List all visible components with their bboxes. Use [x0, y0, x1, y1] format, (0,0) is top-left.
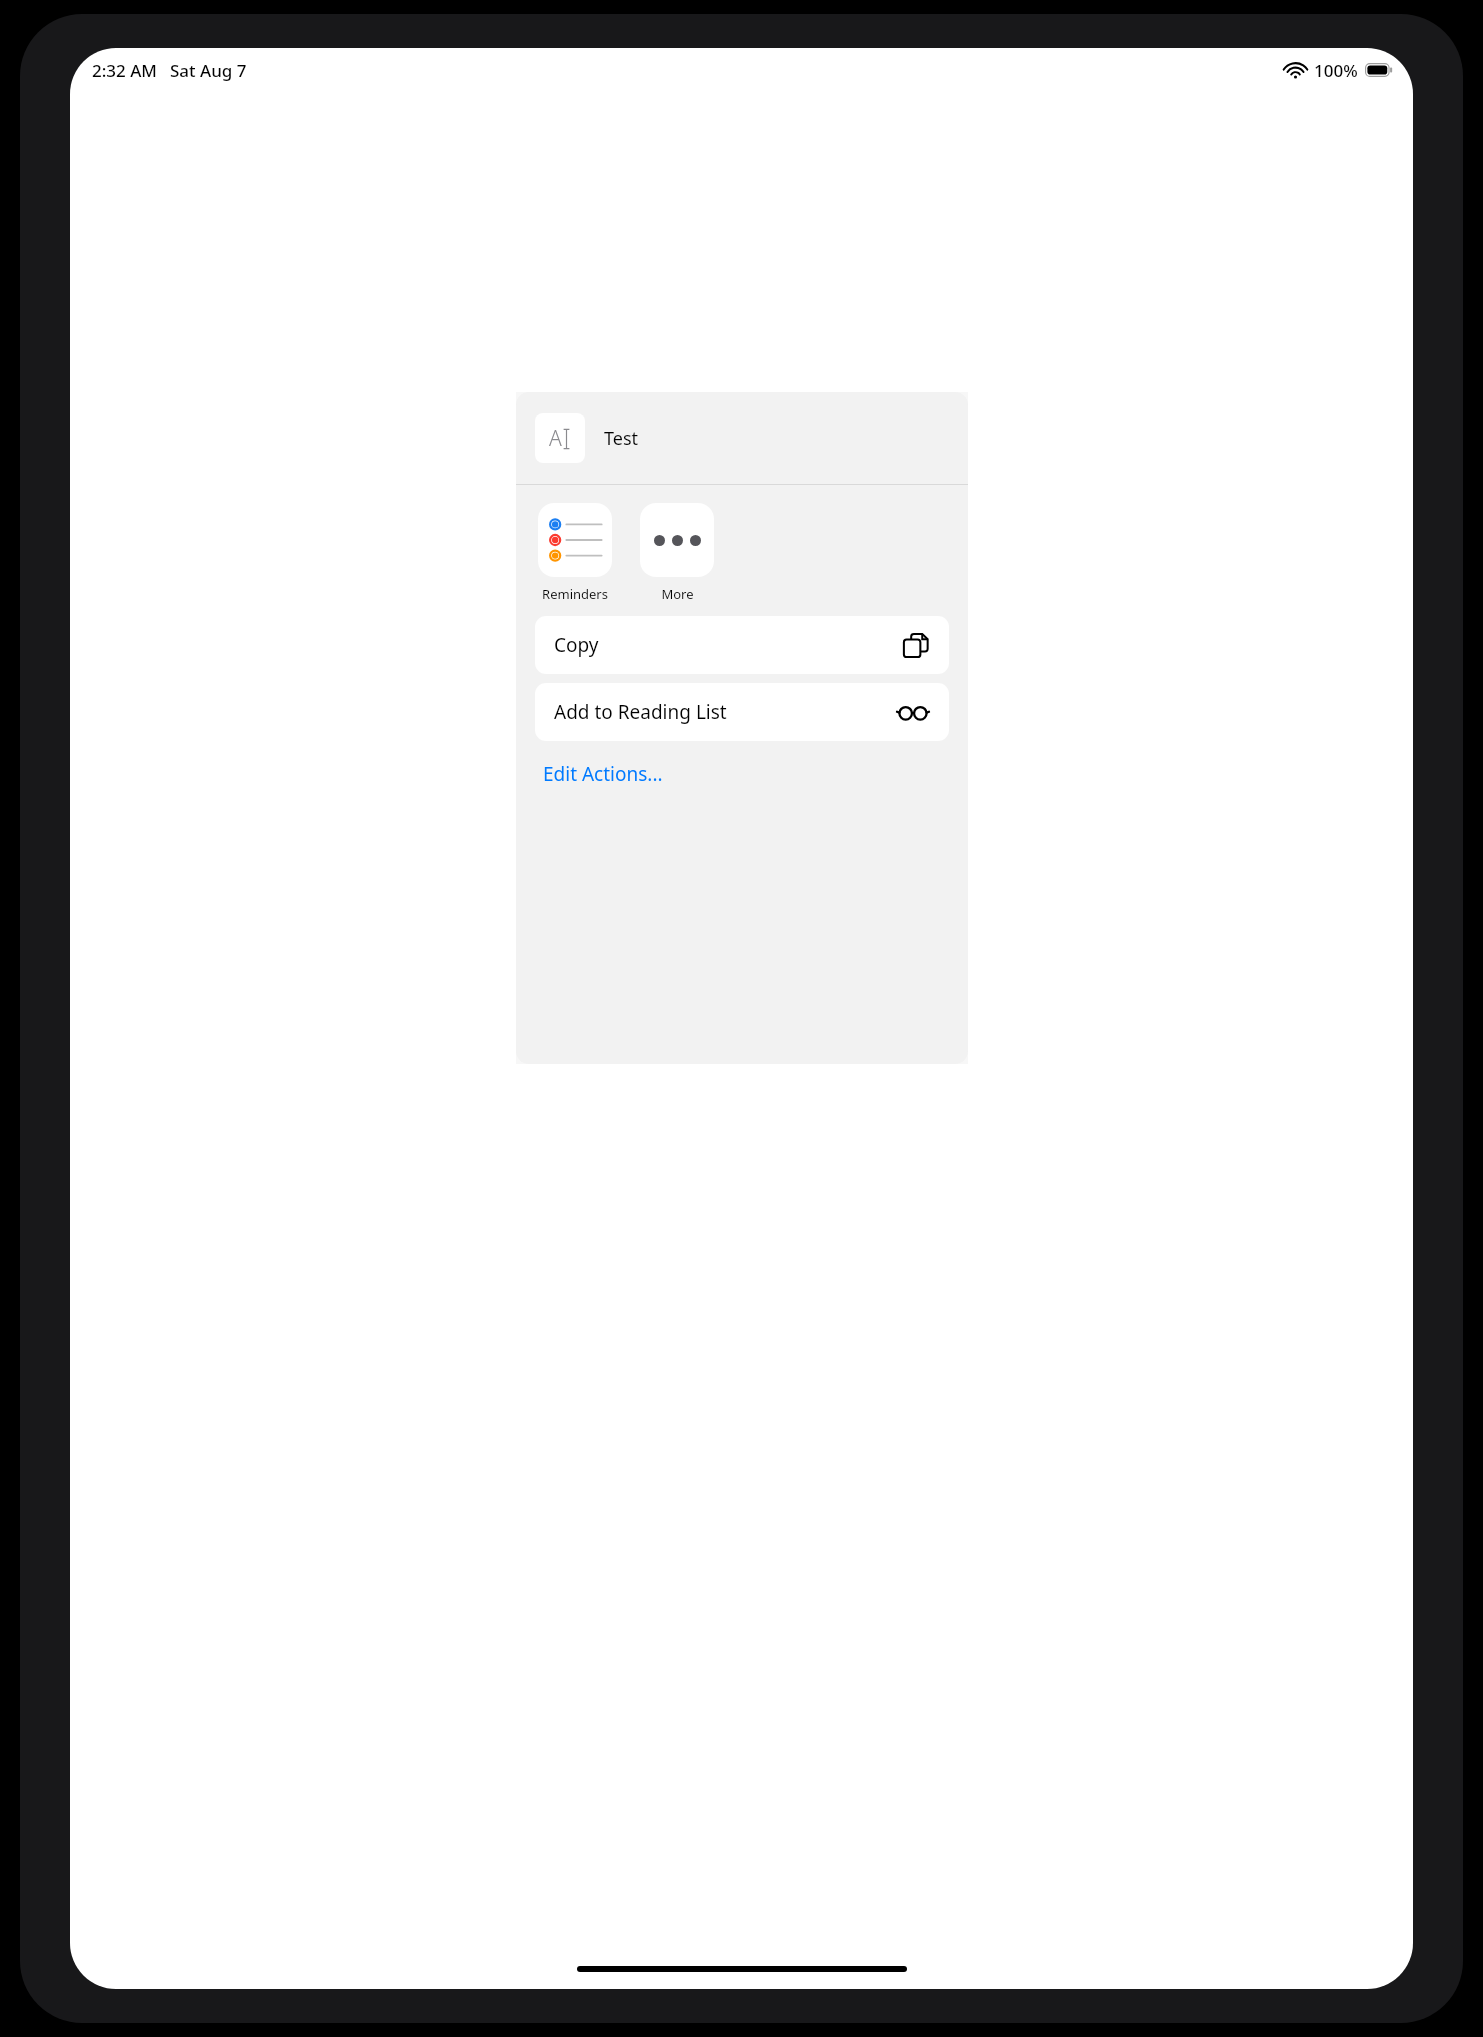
button[interactable]: Copy	[535, 616, 949, 674]
staticText: Edit Actions...	[543, 761, 663, 787]
staticText: Reminders	[542, 585, 608, 603]
button[interactable]: A	[516, 392, 968, 484]
staticText: More	[661, 585, 694, 603]
button[interactable]: More	[640, 503, 714, 603]
staticText: 100%	[1314, 59, 1358, 82]
other: Copy	[900, 630, 930, 660]
staticText: 2:32 AM	[92, 59, 157, 82]
staticText: Add to Reading List	[554, 699, 727, 725]
button[interactable]: Edit Actions...	[516, 753, 968, 795]
staticText: Test	[604, 426, 639, 451]
button[interactable]: Reminders	[538, 503, 612, 603]
staticText: Sat Aug 7	[170, 59, 247, 82]
button[interactable]: Add to Reading List	[535, 683, 949, 741]
staticText: Copy	[554, 632, 599, 658]
staticText: A	[549, 424, 562, 453]
other: Add to Reading List	[896, 701, 930, 723]
